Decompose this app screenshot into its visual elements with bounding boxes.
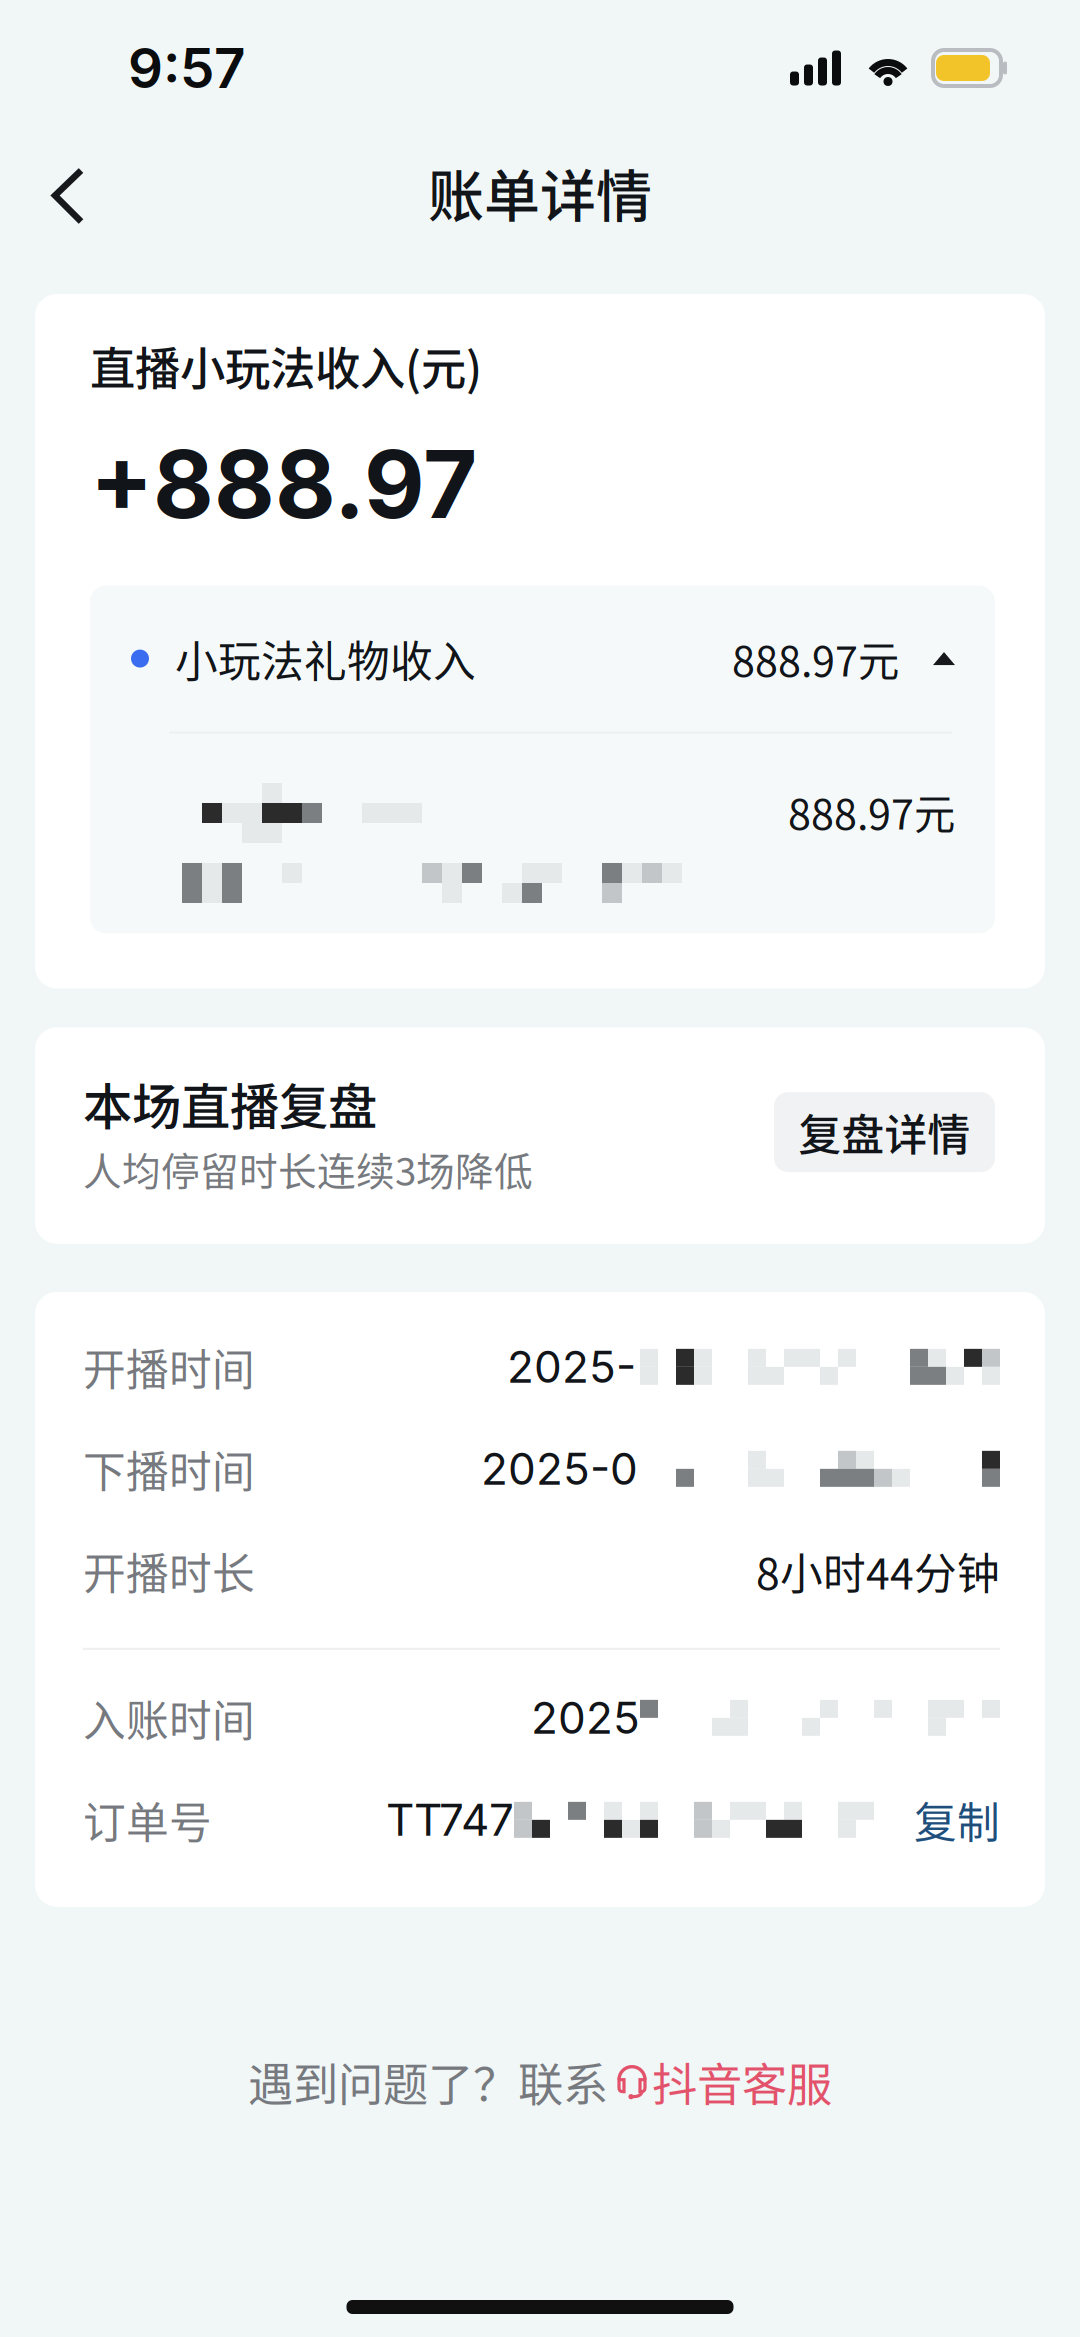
staticText: 9:57: [128, 35, 245, 101]
staticText: 下播时间: [83, 1438, 255, 1500]
staticText: 本场直播复盘: [83, 1067, 377, 1139]
staticText: 开播时间: [83, 1336, 255, 1398]
staticText: TT747: [386, 1793, 514, 1846]
staticText: 账单详情: [428, 151, 652, 233]
staticText: 订单号: [83, 1789, 212, 1851]
staticText: 小玩法礼物收入: [175, 628, 476, 689]
staticText: 2025: [531, 1691, 640, 1744]
button[interactable]: 复盘详情: [774, 1092, 995, 1172]
staticText: 抖音客服: [652, 2049, 832, 2114]
staticText: 遇到问题了？联系: [248, 2049, 608, 2114]
button[interactable]: 复制: [892, 1789, 1000, 1851]
staticText: +888.97: [90, 428, 477, 540]
button[interactable]: 小玩法礼物收入: [90, 586, 995, 732]
staticText: 入账时间: [83, 1687, 255, 1749]
button[interactable]: 遇到问题了？联系: [248, 2049, 832, 2114]
staticText: 复盘详情: [798, 1101, 970, 1163]
staticText: 8小时44分钟: [756, 1540, 1000, 1602]
staticText: 888.97元: [732, 629, 899, 688]
staticText: 人均停留时长连续3场降低: [83, 1141, 533, 1197]
staticText: 开播时长: [83, 1540, 255, 1602]
staticText: 直播小玩法收入(元): [90, 333, 482, 399]
staticText: 2025-0: [481, 1442, 638, 1495]
staticText: 888.97元: [788, 782, 955, 841]
staticText: 2025-: [507, 1340, 636, 1393]
staticText: 复制: [914, 1789, 1000, 1851]
button[interactable]: 返回: [28, 152, 108, 232]
